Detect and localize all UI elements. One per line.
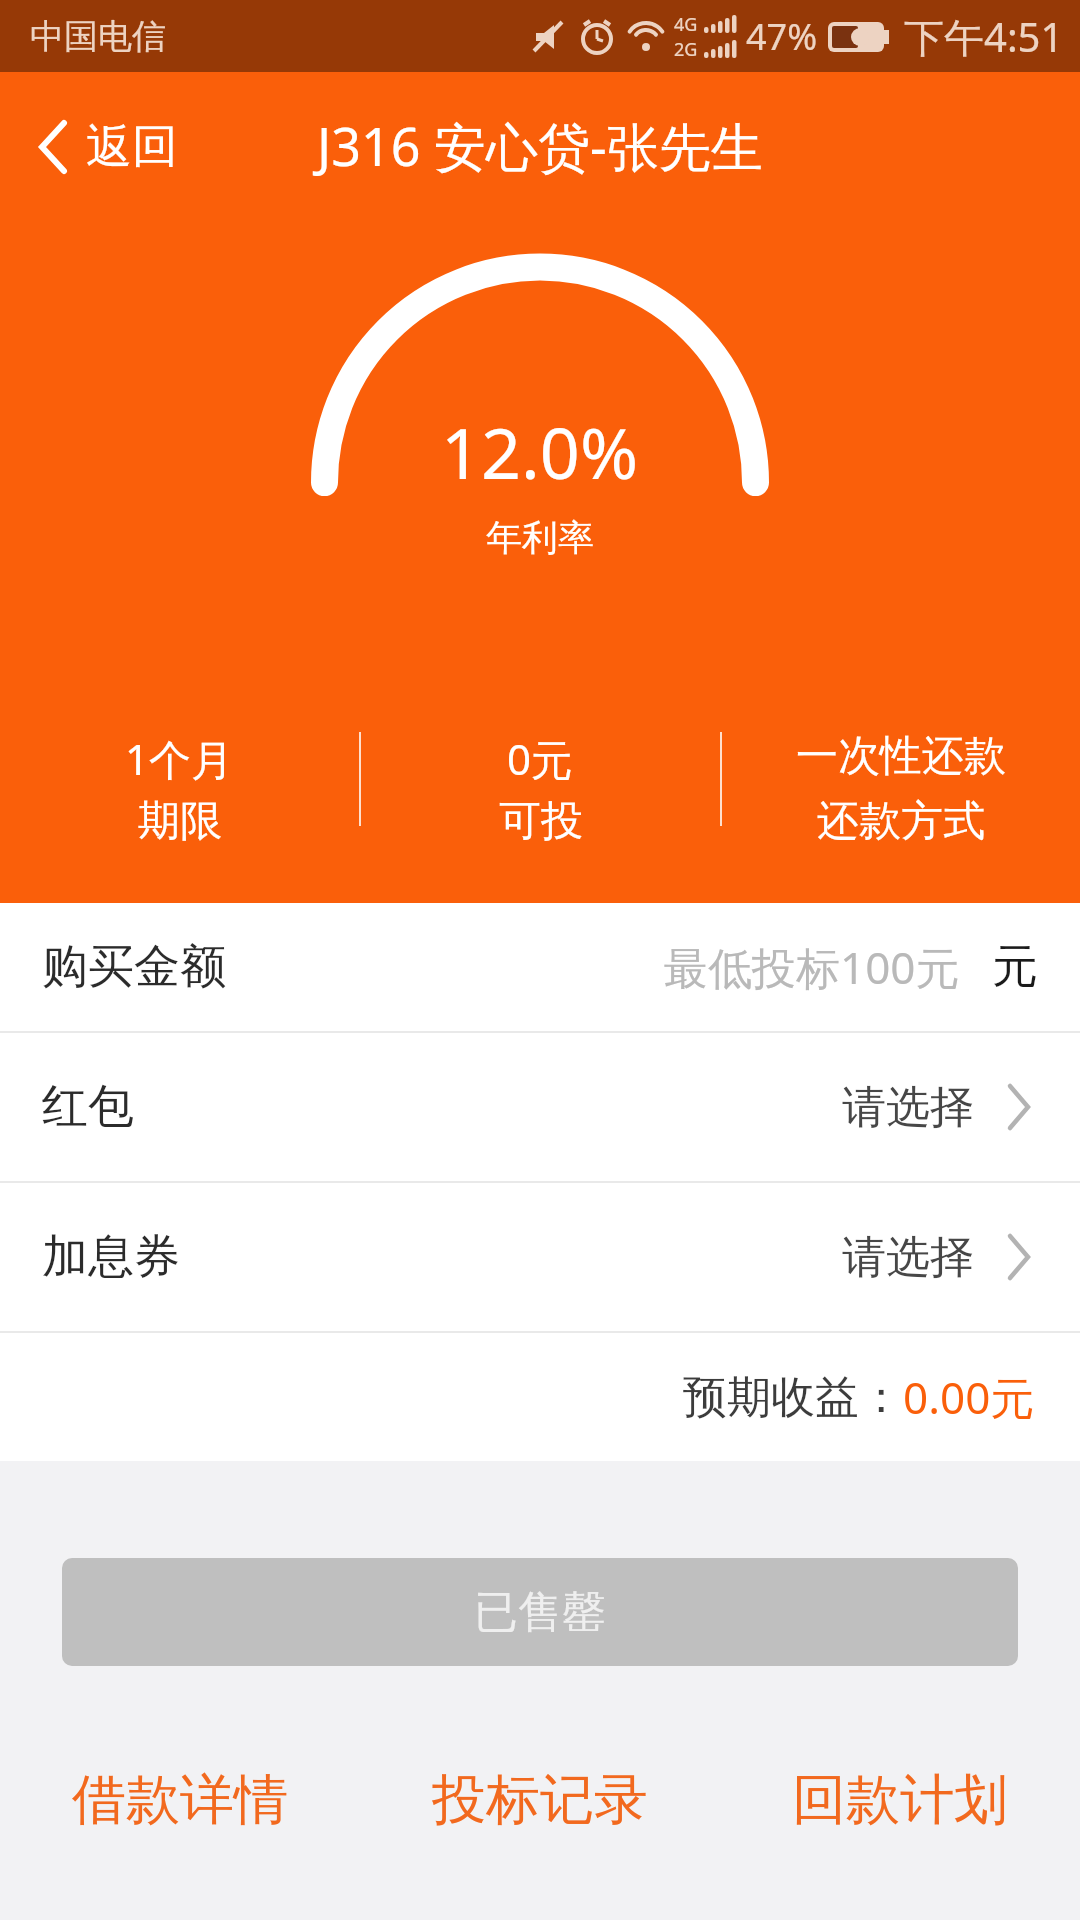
- button[interactable]: 借款详情: [0, 1766, 360, 1834]
- button[interactable]: 已售罄: [62, 1558, 1018, 1666]
- staticText: 预期收益：: [683, 1370, 903, 1425]
- staticText: 0.00元: [903, 1367, 1035, 1427]
- staticText: 2G: [674, 37, 698, 62]
- staticText: 4G: [674, 12, 698, 37]
- staticText: 请选择: [842, 1230, 974, 1285]
- staticText: 请选择: [842, 1080, 974, 1135]
- staticText: 投标记录: [432, 1766, 648, 1834]
- button[interactable]: 红包: [0, 1033, 1080, 1181]
- staticText: 一次性还款: [796, 730, 1006, 783]
- staticText: 可投: [499, 795, 583, 848]
- staticText: 47%: [746, 12, 818, 61]
- staticText: 购买金额: [42, 938, 226, 996]
- staticText: 0元: [507, 730, 574, 787]
- staticText: 回款计划: [792, 1766, 1008, 1834]
- staticText: 返回: [86, 118, 178, 176]
- button[interactable]: 回款计划: [720, 1766, 1080, 1834]
- staticText: 1个月: [125, 730, 234, 787]
- staticText: 最低投标100元: [664, 937, 960, 997]
- button[interactable]: 返回: [36, 115, 178, 179]
- staticText: 年利率: [486, 515, 594, 560]
- staticText: J316 安心贷-张先生: [317, 110, 763, 181]
- staticText: 还款方式: [817, 795, 985, 848]
- staticText: 12.0%: [441, 404, 639, 499]
- button[interactable]: 加息券: [0, 1183, 1080, 1331]
- staticText: 红包: [42, 1078, 134, 1136]
- staticText: 期限: [138, 795, 222, 848]
- staticText: 加息券: [42, 1228, 180, 1286]
- staticText: 元: [992, 938, 1038, 996]
- staticText: 下午4:51: [904, 9, 1064, 64]
- staticText: 已售罄: [474, 1585, 606, 1640]
- button[interactable]: 投标记录: [360, 1766, 720, 1834]
- staticText: 借款详情: [72, 1766, 288, 1834]
- staticText: 中国电信: [30, 15, 166, 58]
